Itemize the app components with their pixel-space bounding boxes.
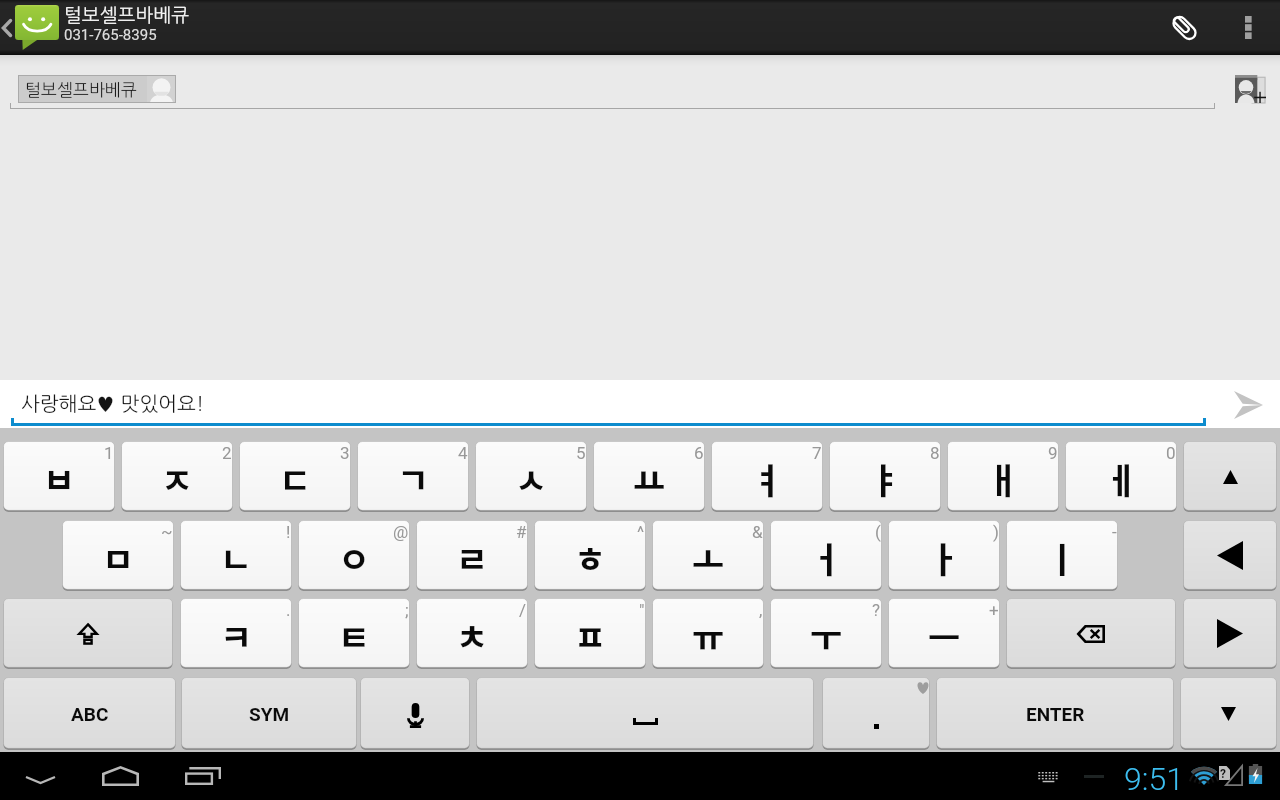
button[interactable]: ㅅ — [475, 441, 587, 512]
staticText: ㅅ — [515, 453, 548, 504]
button[interactable]: Voice input — [360, 677, 470, 750]
staticText: ㅑ — [869, 453, 902, 504]
staticText: & — [752, 522, 763, 542]
button[interactable]: ㅈ — [121, 441, 233, 512]
staticText: ; — [405, 600, 409, 620]
staticText: ㅎ — [574, 532, 607, 583]
staticText: ㅇ — [338, 532, 371, 583]
staticText: , — [759, 600, 763, 620]
button[interactable]: ㅊ — [416, 598, 528, 669]
button[interactable]: ㄷ — [239, 441, 351, 512]
button[interactable]: ㅛ — [593, 441, 705, 512]
staticText: ㅜ — [810, 610, 843, 661]
staticText: 0 — [1166, 443, 1176, 463]
button[interactable]: ㅇ — [298, 520, 410, 591]
staticText: ^ — [637, 522, 645, 542]
button[interactable]: ㅔ — [1065, 441, 1177, 512]
staticText: ㅡ — [928, 610, 961, 661]
button[interactable]: Delete — [1006, 598, 1176, 669]
button[interactable]: ㅡ — [888, 598, 1000, 669]
button[interactable]: ㅁ — [62, 520, 174, 591]
button[interactable]: ㅠ — [652, 598, 764, 669]
staticText: 9 — [1048, 443, 1058, 463]
staticText: / — [519, 600, 527, 620]
staticText: 8 — [930, 443, 940, 463]
button[interactable]: SYM — [181, 677, 357, 750]
button[interactable]: ㅗ — [652, 520, 764, 591]
button[interactable]: ㅕ — [711, 441, 823, 512]
button[interactable]: Back — [4, 752, 77, 800]
button[interactable]: Home — [84, 752, 157, 800]
button[interactable]: Add recipient — [1228, 69, 1272, 110]
button[interactable]: ㄹ — [416, 520, 528, 591]
staticText: # — [516, 522, 527, 542]
staticText: @ — [393, 522, 409, 542]
button[interactable]: ㄱ — [357, 441, 469, 512]
staticText: ! — [286, 522, 291, 542]
staticText: 사랑해요♥ 맛있어요! — [21, 394, 205, 414]
staticText: 털보셀프바베큐 — [64, 6, 190, 25]
button[interactable]: Move right — [1183, 598, 1277, 669]
button[interactable]: Hide keyboard — [1180, 677, 1277, 750]
staticText: ABC — [71, 703, 109, 725]
button[interactable]: Shift up — [1183, 441, 1277, 512]
staticText: 031-765-8395 — [64, 26, 157, 44]
button[interactable]: 털보셀프바베큐 — [18, 75, 176, 103]
button[interactable]: Navigate up — [0, 0, 16, 55]
button[interactable]: ㅋ — [180, 598, 292, 669]
staticText: " — [639, 600, 645, 620]
button[interactable]: Period — [822, 677, 930, 750]
button[interactable]: Send — [1222, 380, 1270, 426]
staticText: 1 — [104, 443, 114, 463]
button[interactable]: More options — [1222, 0, 1274, 55]
button[interactable]: ㅂ — [3, 441, 115, 512]
button[interactable]: ㅌ — [298, 598, 410, 669]
staticText: ? — [872, 600, 881, 620]
staticText: - — [1112, 522, 1117, 542]
staticText: ( — [875, 522, 881, 542]
staticText: ㅛ — [633, 453, 666, 504]
button[interactable]: ㄴ — [180, 520, 292, 591]
staticText: ㅓ — [810, 532, 843, 583]
staticText: ? — [1220, 767, 1226, 781]
staticText: 6 — [694, 443, 704, 463]
staticText: ㅌ — [338, 610, 371, 661]
button[interactable]: Move left — [1183, 520, 1277, 591]
staticText: ㄱ — [397, 453, 430, 504]
staticText: ㄷ — [279, 453, 312, 504]
button[interactable]: ㅏ — [888, 520, 1000, 591]
button[interactable]: Attach — [1156, 0, 1212, 55]
button[interactable]: Space — [476, 677, 814, 750]
staticText: ㅊ — [456, 610, 489, 661]
staticText: ㅣ — [1046, 532, 1079, 583]
button[interactable]: Shift — [3, 598, 173, 669]
button[interactable]: Recent apps — [166, 752, 239, 800]
staticText: ㅗ — [692, 532, 725, 583]
staticText: 털보셀프바베큐 — [25, 81, 137, 98]
staticText: ㄹ — [456, 532, 489, 583]
staticText: 9:51 — [1124, 760, 1184, 798]
button[interactable]: Choose input method — [1032, 766, 1064, 788]
button[interactable]: ㅓ — [770, 520, 882, 591]
staticText: ~ — [161, 522, 173, 542]
staticText: ㅔ — [1105, 453, 1138, 504]
staticText: 4 — [458, 443, 468, 463]
button[interactable]: ㅑ — [829, 441, 941, 512]
button[interactable]: ㅐ — [947, 441, 1059, 512]
staticText: ㅏ — [928, 532, 961, 583]
button[interactable]: ENTER — [936, 677, 1174, 750]
staticText: 5 — [576, 443, 586, 463]
button[interactable]: ㅜ — [770, 598, 882, 669]
button[interactable]: ㅍ — [534, 598, 646, 669]
staticText: 3 — [340, 443, 350, 463]
staticText: ㅁ — [102, 532, 135, 583]
staticText: ㅐ — [987, 453, 1020, 504]
staticText: ENTER — [1026, 703, 1085, 725]
button[interactable]: ABC — [3, 677, 176, 750]
button[interactable]: ㅎ — [534, 520, 646, 591]
staticText: ㅕ — [751, 453, 784, 504]
staticText: 2 — [222, 443, 232, 463]
button[interactable]: ㅣ — [1006, 520, 1118, 591]
staticText: 7 — [812, 443, 822, 463]
staticText: ㅋ — [220, 610, 253, 661]
